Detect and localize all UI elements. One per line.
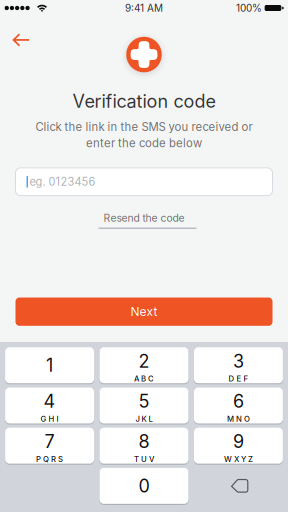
staticText: enter the code below: [86, 136, 202, 150]
staticText: J K L: [135, 414, 152, 424]
button[interactable]: 0: [99, 468, 188, 504]
button[interactable]: Next: [15, 297, 272, 326]
staticText: 2: [138, 350, 149, 372]
button[interactable]: 5: [99, 387, 188, 423]
staticText: 5: [138, 390, 149, 412]
staticText: Next: [130, 304, 157, 319]
staticText: M N O: [227, 414, 250, 424]
button[interactable]: Delete: [194, 468, 283, 504]
staticText: 100%: [236, 2, 262, 14]
staticText: A B C: [134, 374, 154, 383]
staticText: 1: [46, 354, 53, 376]
staticText: 4: [44, 390, 56, 412]
button[interactable]: 4: [5, 387, 94, 423]
staticText: P Q R S: [36, 454, 63, 464]
button[interactable]: 3: [194, 347, 283, 383]
staticText: 0: [138, 475, 149, 497]
button[interactable]: 9: [194, 428, 283, 464]
staticText: 9: [233, 431, 244, 452]
staticText: W X Y Z: [224, 454, 253, 464]
staticText: Click the link in the SMS you received o…: [35, 120, 252, 134]
button[interactable]: Back: [0, 30, 43, 58]
staticText: 7: [45, 431, 55, 452]
staticText: 6: [233, 390, 244, 412]
button[interactable]: 2: [99, 347, 188, 383]
staticText: 9:41 AM: [125, 2, 163, 14]
button[interactable]: 8: [99, 428, 188, 464]
staticText: eg. 0123456: [29, 175, 95, 188]
staticText: G H I: [41, 414, 59, 424]
staticText: D E F: [228, 374, 248, 383]
button[interactable]: 1: [5, 347, 94, 383]
button[interactable]: Resend the code: [83, 210, 204, 231]
staticText: 8: [138, 431, 149, 452]
staticText: T U V: [134, 454, 154, 464]
button[interactable]: 7: [5, 428, 94, 464]
staticText: Verification code: [72, 90, 215, 112]
button[interactable]: 6: [194, 387, 283, 423]
staticText: 3: [233, 350, 244, 372]
staticText: Resend the code: [103, 212, 184, 224]
